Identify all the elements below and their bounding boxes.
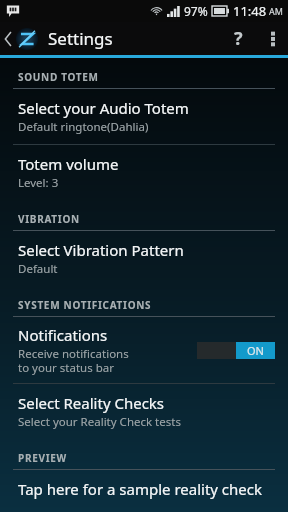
staticText: SYSTEM NOTIFICATIONS xyxy=(18,298,152,312)
staticText: Default xyxy=(18,261,58,277)
staticText: Receive notifications to your status bar xyxy=(18,346,138,375)
staticText: VIBRATION xyxy=(18,212,80,226)
button[interactable]: Totem volume xyxy=(0,145,288,200)
staticText: Select Reality Checks xyxy=(18,393,165,413)
staticText: Totem volume xyxy=(18,154,119,174)
staticText: Select your Reality Check tests xyxy=(18,414,181,430)
button[interactable]: Select Reality Checks xyxy=(0,384,288,439)
button[interactable]: Select Vibration Pattern xyxy=(0,231,288,286)
staticText: Default ringtone(Dahlia) xyxy=(18,119,149,135)
button[interactable]: Navigate up xyxy=(0,22,42,55)
staticText: Tap here for a sample reality check xyxy=(18,479,263,499)
staticText: 97% xyxy=(184,3,208,19)
button[interactable]: Notifications xyxy=(0,317,288,383)
staticText: Select your Audio Totem xyxy=(18,98,189,118)
staticText: SOUND TOTEM xyxy=(18,70,99,84)
staticText: Level: 3 xyxy=(18,175,59,191)
staticText: PREVIEW xyxy=(18,451,67,465)
button[interactable]: Notifications toggle, on xyxy=(197,342,275,359)
staticText: AM xyxy=(269,5,283,17)
button[interactable]: Tap here for a sample reality check xyxy=(0,470,288,508)
staticText: ? xyxy=(234,26,243,51)
button[interactable]: Select your Audio Totem xyxy=(0,89,288,144)
button[interactable]: Help xyxy=(218,22,258,55)
staticText: Settings xyxy=(48,27,113,50)
staticText: Notifications xyxy=(18,325,108,345)
staticText: 11:48 xyxy=(233,2,267,20)
staticText: ON xyxy=(247,343,264,358)
staticText: Select Vibration Pattern xyxy=(18,240,184,260)
button[interactable]: More options xyxy=(258,22,288,55)
